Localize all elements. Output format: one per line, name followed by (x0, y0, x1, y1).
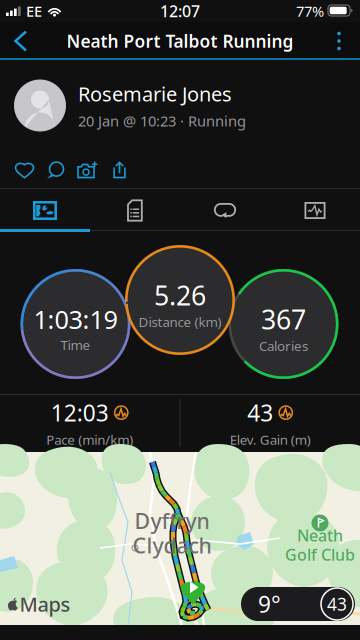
staticText: Rosemarie Jones (78, 80, 232, 107)
staticText: Golf Club (285, 544, 355, 565)
staticText: 9° (258, 589, 281, 619)
staticText: Pace (min/km) (46, 431, 133, 448)
staticText: 12:03 (51, 398, 109, 428)
button[interactable]: Add photo (71, 151, 104, 189)
button[interactable]: Comment (40, 151, 71, 189)
staticText: Clydach (132, 531, 211, 559)
staticText: 367 (261, 301, 306, 337)
button[interactable]: Details (90, 189, 180, 232)
button[interactable]: Share (104, 151, 135, 189)
staticText: Neath (297, 525, 343, 546)
staticText: EE (26, 1, 42, 21)
button[interactable]: More options (318, 22, 360, 60)
button[interactable]: Laps (180, 189, 270, 232)
staticText: 12:07 (160, 0, 200, 22)
staticText: 43 (327, 592, 347, 615)
button[interactable]: Photos (0, 189, 90, 232)
staticText: 20 Jan @ 10:23 · Running (78, 111, 246, 130)
staticText: Calories (259, 337, 308, 355)
staticText: Elev. Gain (m) (230, 431, 311, 448)
staticText: 77% (296, 1, 324, 21)
button[interactable]: Back (0, 22, 42, 60)
staticText: 1:03:19 (33, 302, 117, 336)
staticText: 43 (247, 398, 273, 428)
staticText: Neath Port Talbot Running (66, 29, 293, 52)
staticText: Maps (19, 591, 70, 617)
button[interactable]: Charts (270, 189, 360, 232)
button[interactable]: Rosemarie Jones (0, 60, 360, 151)
button[interactable]: Like (9, 151, 40, 189)
staticText: Dyffryn (134, 507, 209, 535)
staticText: 5.26 (154, 277, 206, 313)
staticText: Time (60, 336, 90, 354)
staticText: Distance (km) (138, 313, 221, 331)
